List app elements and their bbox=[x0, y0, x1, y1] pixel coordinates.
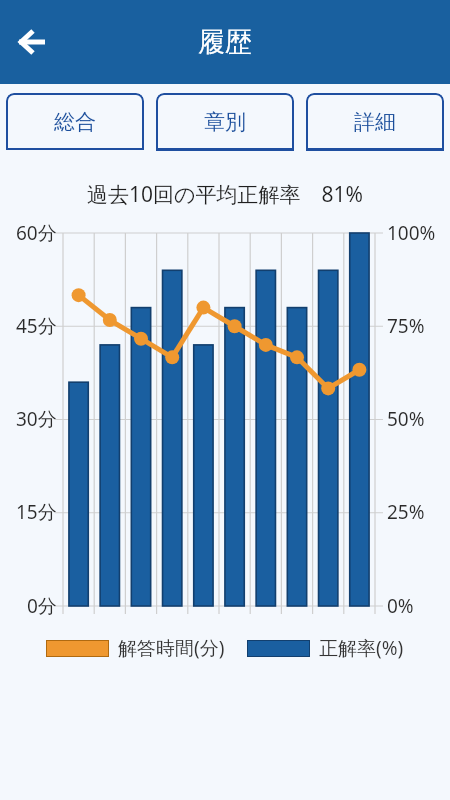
staticText: 50% bbox=[387, 406, 425, 432]
staticText: 正解率(%) bbox=[319, 635, 404, 661]
staticText: 30分 bbox=[16, 406, 57, 432]
button[interactable]: 詳細 bbox=[306, 93, 444, 150]
staticText: 60分 bbox=[16, 220, 57, 246]
staticText: 履歴 bbox=[198, 25, 252, 59]
staticText: 章別 bbox=[204, 109, 246, 135]
button[interactable]: Back bbox=[6, 16, 58, 68]
staticText: 過去10回の平均正解率 81% bbox=[87, 180, 363, 209]
staticText: 詳細 bbox=[354, 109, 396, 135]
button[interactable]: 章別 bbox=[156, 93, 294, 150]
staticText: 15分 bbox=[16, 499, 57, 525]
staticText: 75% bbox=[387, 313, 425, 339]
staticText: 0% bbox=[387, 593, 414, 619]
staticText: 0分 bbox=[27, 593, 57, 619]
button[interactable]: 総合 bbox=[6, 93, 144, 150]
staticText: 45分 bbox=[16, 313, 57, 339]
staticText: 解答時間(分) bbox=[118, 635, 225, 661]
staticText: 25% bbox=[387, 499, 425, 525]
staticText: 100% bbox=[387, 220, 436, 246]
staticText: 総合 bbox=[54, 109, 96, 135]
